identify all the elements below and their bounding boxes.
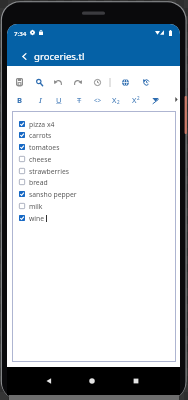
staticText: <>: [94, 96, 102, 104]
staticText: I: [39, 95, 42, 105]
button[interactable]: strawberries: [12, 165, 176, 177]
staticText: B: [17, 95, 23, 105]
button[interactable]: redo: [70, 74, 86, 90]
button[interactable]: clear: [147, 92, 163, 108]
button[interactable]: Home: [85, 374, 99, 388]
button[interactable]: search: [31, 74, 47, 90]
button[interactable]: bread: [12, 176, 176, 188]
staticText: X: [132, 95, 137, 105]
button[interactable]: Navigate up: [15, 47, 33, 65]
staticText: tomatoes: [29, 143, 60, 152]
button[interactable]: milk: [12, 200, 176, 212]
staticText: strawberries: [29, 167, 70, 176]
button[interactable]: Back: [42, 374, 56, 388]
button[interactable]: undo: [50, 74, 66, 90]
staticText: X: [112, 95, 117, 105]
button[interactable]: code: [90, 92, 106, 108]
button[interactable]: clock: [89, 74, 105, 90]
button[interactable]: cheese: [12, 153, 176, 165]
staticText: 7:34: [14, 29, 27, 37]
staticText: 2: [137, 95, 140, 101]
button[interactable]: B: [12, 92, 28, 108]
staticText: milk: [29, 202, 43, 211]
button[interactable]: carrots: [12, 129, 176, 141]
button[interactable]: tomatoes: [12, 141, 176, 153]
button[interactable]: save: [11, 74, 27, 90]
staticText: bread: [29, 178, 48, 187]
button[interactable]: globe: [117, 74, 133, 90]
button[interactable]: pizza x4: [12, 118, 176, 130]
button[interactable]: sup: [128, 92, 144, 108]
button[interactable]: Recents: [129, 374, 143, 388]
button[interactable]: I: [32, 92, 48, 108]
button[interactable]: U: [51, 92, 67, 108]
button[interactable]: history: [138, 74, 154, 90]
staticText: cheese: [29, 155, 52, 164]
staticText: pizza x4: [29, 120, 55, 129]
button[interactable]: strike: [71, 92, 87, 108]
staticText: 2: [117, 99, 120, 105]
button[interactable]: sansho pepper: [12, 188, 176, 200]
staticText: U: [56, 95, 62, 105]
staticText: T: [77, 95, 82, 105]
button[interactable]: wine: [12, 212, 176, 224]
button[interactable]: sub: [108, 92, 124, 108]
staticText: groceries.tl: [34, 50, 85, 63]
staticText: sansho pepper: [29, 190, 77, 199]
staticText: wine: [29, 214, 45, 223]
staticText: carrots: [29, 131, 52, 140]
